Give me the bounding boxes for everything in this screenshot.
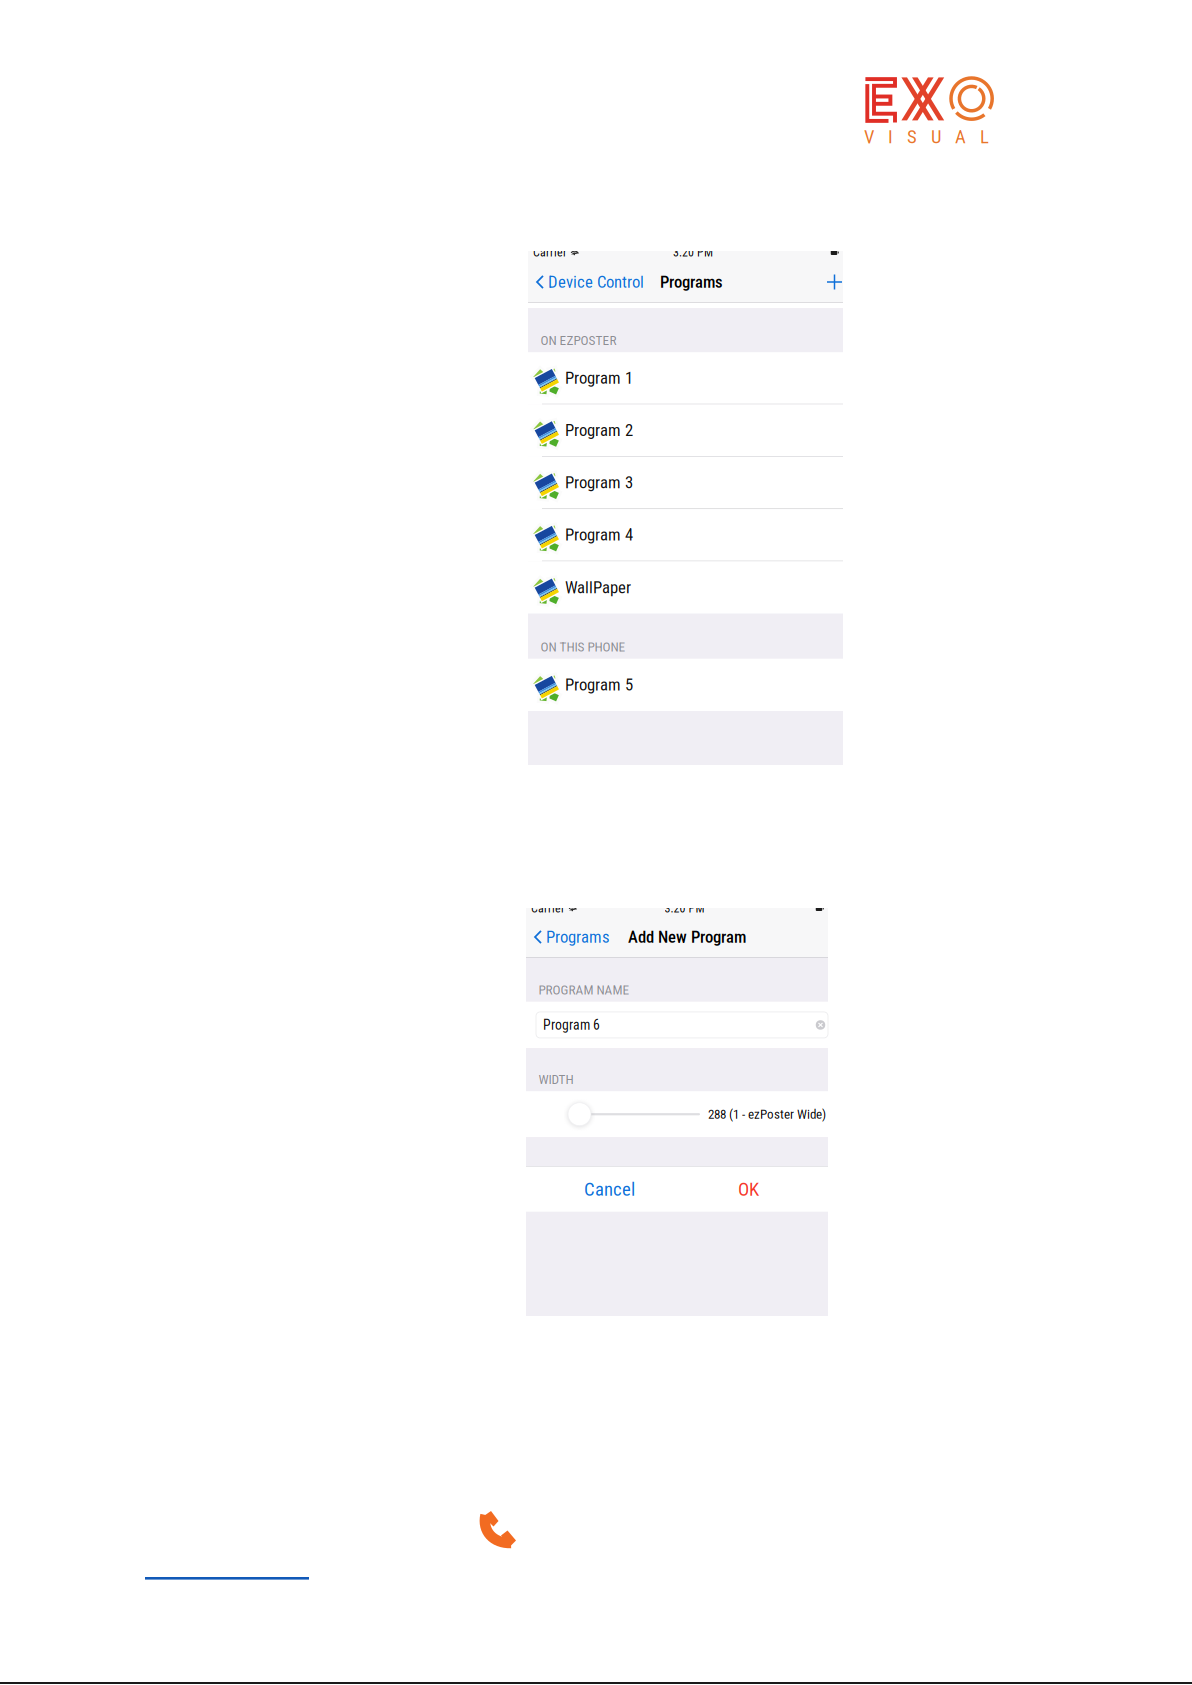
staticText: 288 (1 - ezPoster Wide) <box>708 1106 826 1122</box>
staticText: ON THIS PHONE <box>540 639 625 655</box>
staticText: OK <box>738 1178 759 1200</box>
button[interactable]: Web site link <box>145 1577 309 1580</box>
button[interactable]: Programs <box>526 917 610 957</box>
staticText: WIDTH <box>538 1072 573 1087</box>
button[interactable]: Program 1 <box>528 352 843 404</box>
button[interactable]: Cancel <box>526 1167 693 1212</box>
button[interactable]: Program 4 <box>528 509 843 561</box>
staticText: PROGRAM NAME <box>538 982 629 998</box>
button[interactable]: Program 5 <box>528 659 843 711</box>
staticText: 3:20 PM <box>673 245 713 260</box>
staticText: Program 1 <box>565 368 633 388</box>
button[interactable]: Program 2 <box>528 404 843 457</box>
staticText: 3:20 PM <box>664 901 704 916</box>
button[interactable]: Program 3 <box>528 457 843 509</box>
staticText: Program 2 <box>565 420 633 440</box>
staticText: Device Control <box>548 272 644 292</box>
staticText: Program 5 <box>565 675 633 695</box>
button[interactable]: Device Control <box>528 262 644 302</box>
staticText: Add New Program <box>628 927 746 947</box>
staticText: Cancel <box>584 1178 635 1200</box>
staticText: Carrier <box>533 245 567 260</box>
button[interactable]: WallPaper <box>528 561 843 614</box>
button[interactable]: Add Program <box>827 262 843 302</box>
staticText: ON EZPOSTER <box>540 333 616 348</box>
staticText: WallPaper <box>565 578 631 597</box>
staticText: Programs <box>546 927 610 947</box>
staticText: Carrier <box>531 901 565 916</box>
staticText: Programs <box>660 272 723 292</box>
staticText: VISUAL <box>864 126 989 148</box>
button[interactable]: OK <box>693 1167 828 1212</box>
staticText: Program 6 <box>543 1017 600 1033</box>
staticText: Program 4 <box>565 525 633 545</box>
staticText: Program 3 <box>565 473 633 492</box>
